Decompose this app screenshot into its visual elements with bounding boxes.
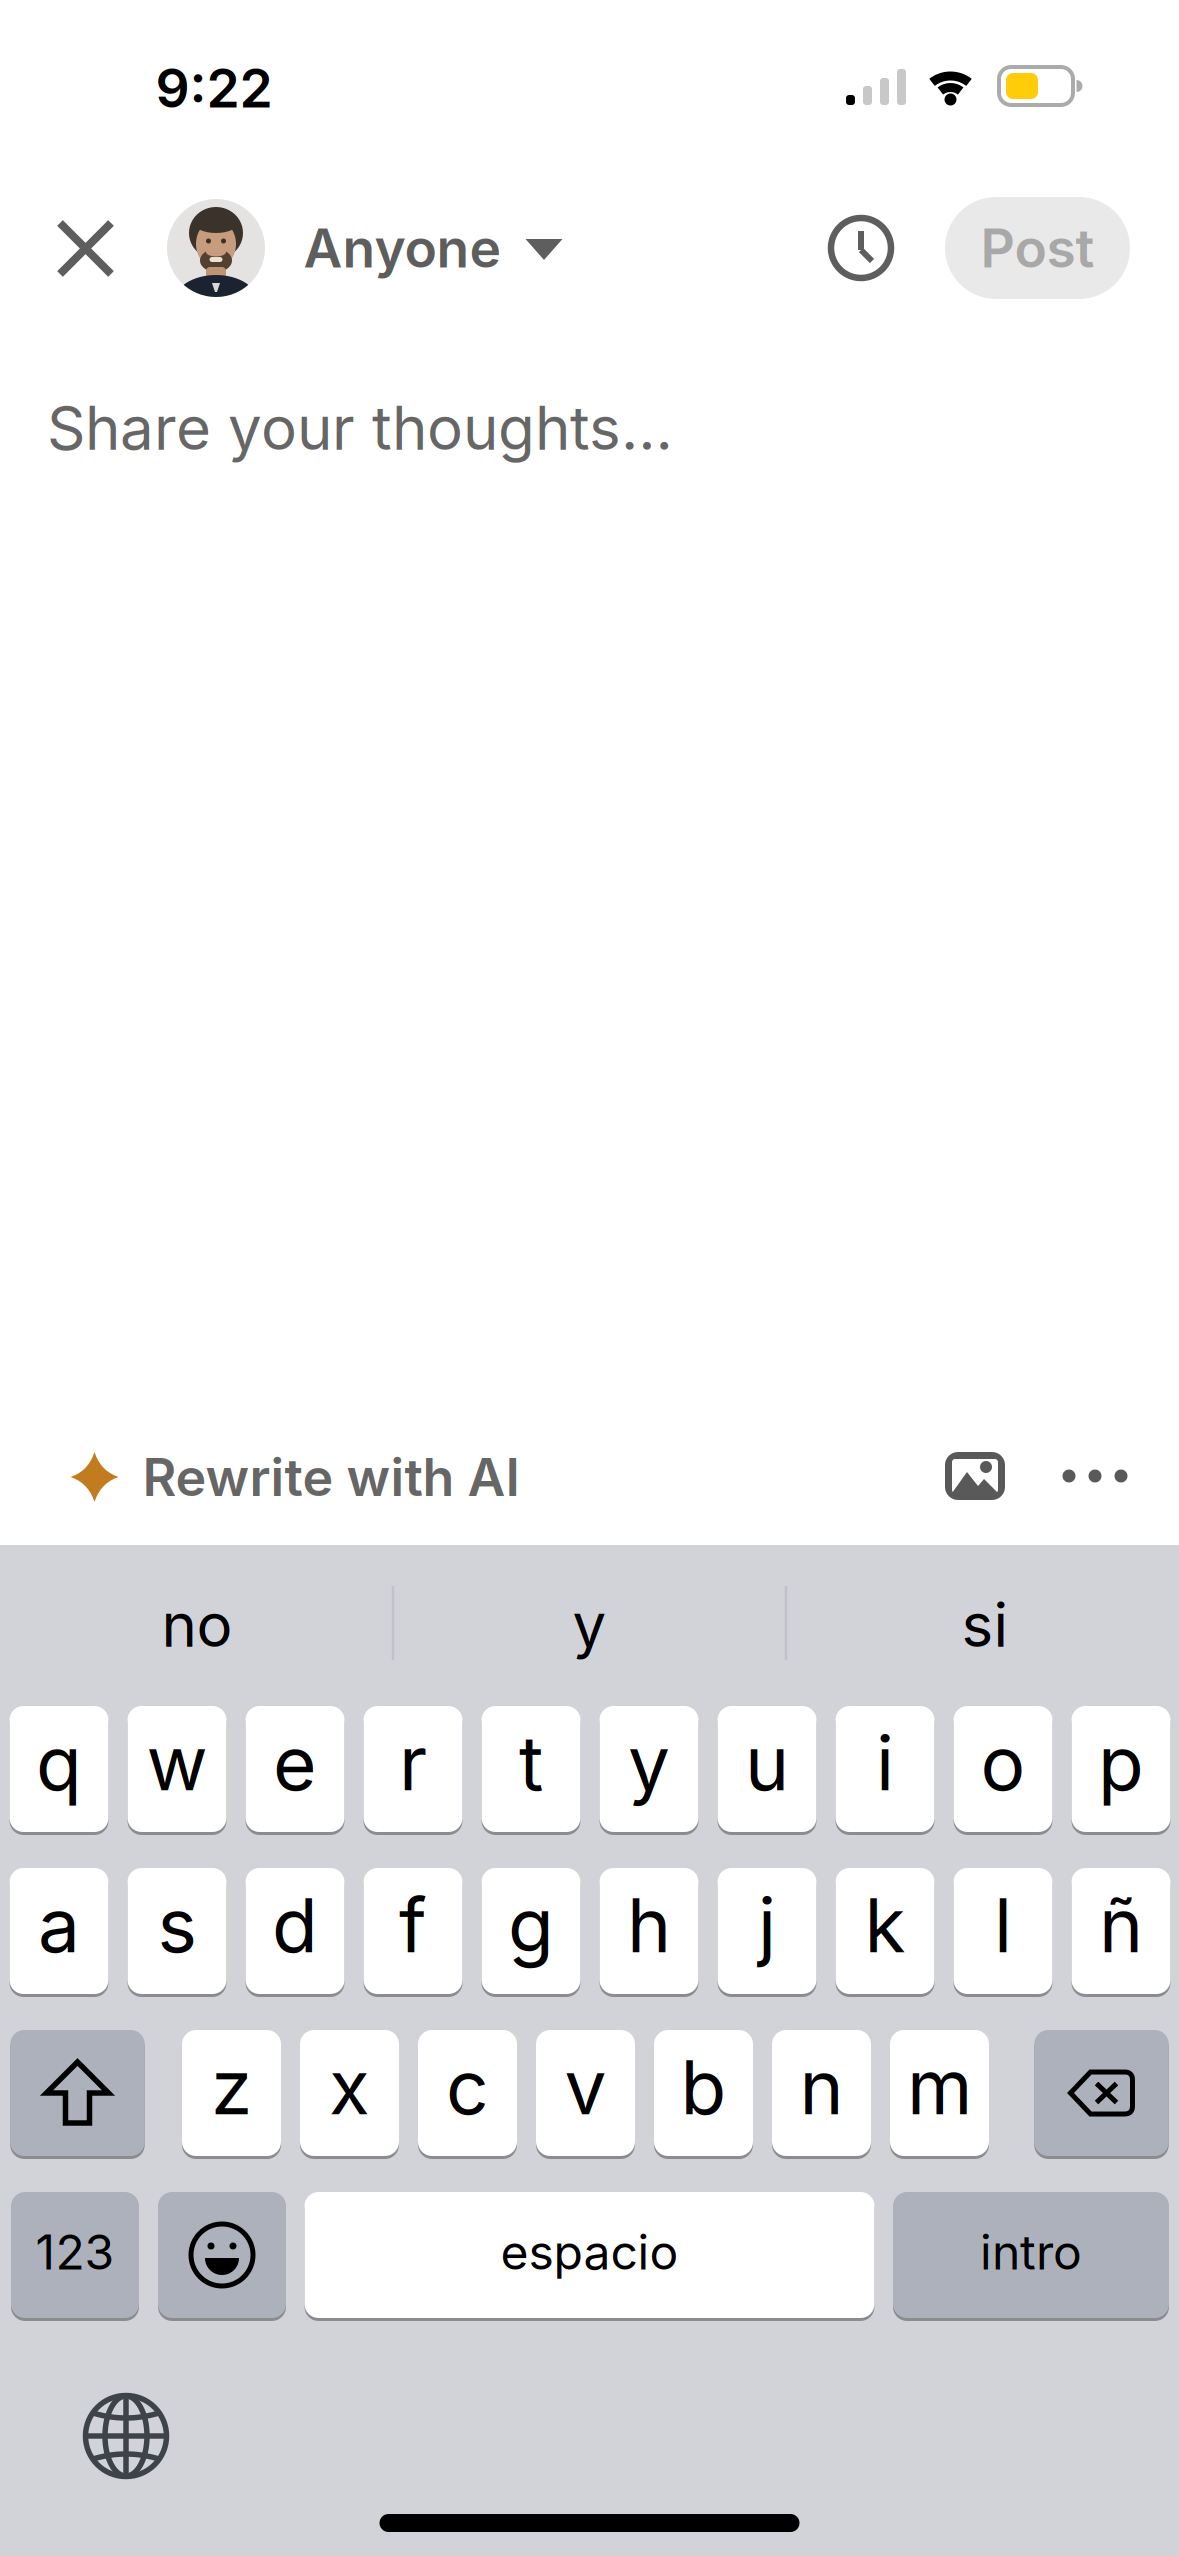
staticText: f xyxy=(399,1881,427,1969)
staticText: Anyone xyxy=(303,216,501,279)
button[interactable]: y xyxy=(419,1570,759,1680)
staticText: j xyxy=(758,1881,776,1969)
button[interactable]: r xyxy=(363,1706,462,1832)
staticText: k xyxy=(864,1881,905,1969)
staticText: y xyxy=(572,1590,606,1660)
staticText: Post xyxy=(980,216,1094,279)
staticText: u xyxy=(745,1719,789,1807)
button[interactable]: Next keyboard xyxy=(83,2393,169,2479)
button[interactable]: no xyxy=(27,1570,367,1680)
button[interactable]: Rewrite with AI xyxy=(70,1446,519,1508)
button[interactable]: l xyxy=(953,1868,1052,1994)
button[interactable]: j xyxy=(717,1868,816,1994)
staticText: ñ xyxy=(1099,1881,1143,1969)
staticText: s xyxy=(157,1881,196,1969)
staticText: si xyxy=(961,1590,1008,1660)
button[interactable]: g xyxy=(481,1868,580,1994)
staticText: intro xyxy=(980,2224,1082,2280)
staticText: q xyxy=(36,1719,82,1807)
staticText: 123 xyxy=(35,2224,114,2280)
staticText: Rewrite with AI xyxy=(142,1446,519,1508)
staticText: p xyxy=(1098,1719,1144,1807)
button[interactable]: Anyone xyxy=(303,216,562,279)
button[interactable]: Dismiss xyxy=(57,220,114,277)
button[interactable]: w xyxy=(127,1706,226,1832)
staticText: a xyxy=(38,1881,80,1969)
button[interactable]: p xyxy=(1071,1706,1170,1832)
staticText: c xyxy=(446,2043,489,2131)
button[interactable]: Schedule post xyxy=(830,217,892,279)
staticText: x xyxy=(329,2043,370,2131)
button[interactable]: Shift xyxy=(10,2030,145,2156)
button[interactable]: espacio xyxy=(304,2192,874,2318)
staticText: e xyxy=(273,1719,317,1807)
button[interactable]: intro xyxy=(893,2192,1169,2318)
button[interactable]: More options xyxy=(1062,1469,1127,1482)
staticText: espacio xyxy=(500,2224,678,2280)
button[interactable]: m xyxy=(890,2030,989,2156)
button[interactable]: b xyxy=(654,2030,753,2156)
button[interactable]: si xyxy=(815,1570,1155,1680)
staticText: o xyxy=(980,1719,1025,1807)
button[interactable]: Emoji xyxy=(158,2192,286,2318)
button[interactable]: Post xyxy=(945,197,1130,299)
button[interactable]: v xyxy=(536,2030,635,2156)
staticText: no xyxy=(161,1590,232,1660)
button[interactable]: 123 xyxy=(11,2192,139,2318)
button[interactable]: f xyxy=(363,1868,462,1994)
button[interactable]: t xyxy=(481,1706,580,1832)
button[interactable]: q xyxy=(9,1706,108,1832)
staticText: r xyxy=(399,1719,427,1807)
staticText: y xyxy=(628,1719,670,1807)
button[interactable]: u xyxy=(717,1706,816,1832)
button[interactable]: h xyxy=(599,1868,698,1994)
button[interactable]: ñ xyxy=(1071,1868,1170,1994)
staticText: d xyxy=(272,1881,318,1969)
staticText: z xyxy=(211,2043,252,2131)
staticText: l xyxy=(994,1881,1012,1969)
staticText: 9:22 xyxy=(155,56,272,119)
button[interactable]: a xyxy=(9,1868,108,1994)
button[interactable]: s xyxy=(127,1868,226,1994)
button[interactable]: Profile xyxy=(167,199,265,297)
staticText: g xyxy=(508,1881,554,1969)
staticText: m xyxy=(907,2043,972,2131)
button[interactable]: e xyxy=(245,1706,344,1832)
button[interactable]: k xyxy=(835,1868,934,1994)
button[interactable]: x xyxy=(300,2030,399,2156)
button[interactable]: c xyxy=(418,2030,517,2156)
staticText: v xyxy=(564,2043,606,2131)
staticText: Share your thoughts… xyxy=(47,393,673,463)
staticText: w xyxy=(146,1719,207,1807)
staticText: h xyxy=(627,1881,671,1969)
button[interactable]: Delete xyxy=(1034,2030,1169,2156)
button[interactable]: i xyxy=(835,1706,934,1832)
staticText: b xyxy=(680,2043,726,2131)
button[interactable]: Add media xyxy=(945,1452,1005,1500)
staticText: n xyxy=(799,2043,843,2131)
button[interactable]: d xyxy=(245,1868,344,1994)
button[interactable]: o xyxy=(953,1706,1052,1832)
staticText: t xyxy=(519,1719,543,1807)
button[interactable]: n xyxy=(772,2030,871,2156)
button[interactable]: y xyxy=(599,1706,698,1832)
button[interactable]: z xyxy=(182,2030,281,2156)
staticText: i xyxy=(876,1719,894,1807)
